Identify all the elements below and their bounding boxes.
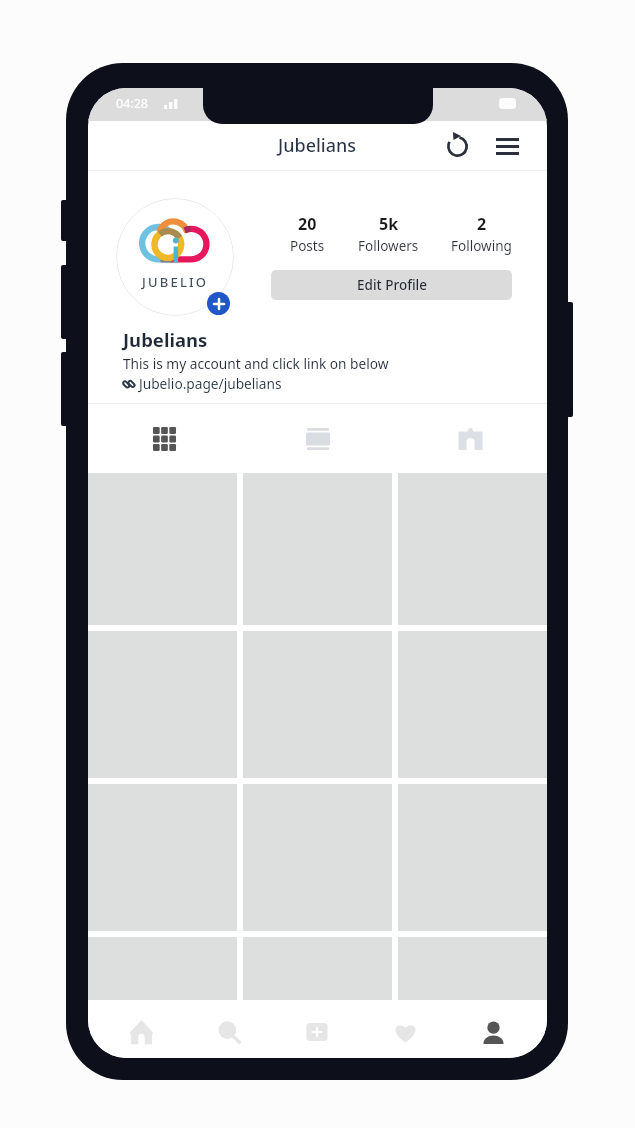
button[interactable]: Menu xyxy=(489,128,525,164)
staticText: This is my account and click link on bel… xyxy=(123,354,389,373)
button[interactable]: Likes xyxy=(361,1006,449,1058)
button[interactable]: Profile photo xyxy=(116,198,234,316)
staticText: 20 xyxy=(298,213,317,235)
staticText: Jubelians xyxy=(123,327,208,352)
button[interactable]: Tagged xyxy=(394,404,547,473)
button[interactable]: Home xyxy=(98,1006,185,1058)
staticText: JUBELIO xyxy=(142,273,209,291)
button[interactable]: Reels xyxy=(241,404,394,473)
staticText: Following xyxy=(451,237,512,255)
button[interactable]: Profile xyxy=(449,1006,537,1058)
button[interactable]: Refresh xyxy=(439,128,475,164)
button[interactable]: 2 xyxy=(451,213,512,255)
button[interactable]: Add story xyxy=(207,292,230,315)
staticText: Jubelians xyxy=(278,133,357,158)
button[interactable]: Add post xyxy=(273,1006,361,1058)
button[interactable]: Jubelio.page/jubelians xyxy=(123,374,282,393)
staticText: 04:28 xyxy=(116,95,148,112)
button[interactable]: 20 xyxy=(290,213,325,255)
staticText: Posts xyxy=(290,237,325,255)
button[interactable]: Edit Profile xyxy=(271,270,512,300)
staticText: Edit Profile xyxy=(357,276,427,294)
staticText: Followers xyxy=(358,237,419,255)
staticText: Jubelio.page/jubelians xyxy=(139,374,282,393)
button[interactable]: Search xyxy=(185,1006,273,1058)
button[interactable]: 5k xyxy=(358,213,419,255)
staticText: 2 xyxy=(477,213,487,235)
button[interactable]: Grid posts xyxy=(88,404,241,473)
staticText: 5k xyxy=(379,213,399,235)
